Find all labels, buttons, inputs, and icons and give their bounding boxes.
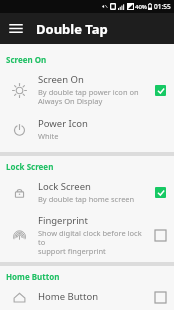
staticText: 40% <box>135 3 147 11</box>
staticText: Screen On <box>6 54 47 65</box>
button[interactable]: Home Button <box>0 285 174 310</box>
staticText: By double tap power icon on Always On Di… <box>38 87 139 107</box>
staticText: Screen On <box>38 73 84 86</box>
staticText: 01:55 <box>154 2 171 11</box>
button[interactable]: Lock Screen <box>0 175 174 209</box>
button[interactable]: Screen On <box>0 68 174 112</box>
button[interactable]: Open navigation menu <box>0 13 31 44</box>
staticText: Fingerprint <box>38 214 88 227</box>
staticText: By double tap home screen <box>38 194 135 204</box>
button[interactable]: Disabled <box>155 292 166 303</box>
button[interactable]: Disabled <box>155 230 166 241</box>
button[interactable]: Fingerprint <box>0 209 174 262</box>
staticText: Lock Screen <box>38 180 91 193</box>
button[interactable]: Enabled <box>155 187 166 198</box>
staticText: White <box>38 131 59 141</box>
staticText: Show digital clock before lock to suppor… <box>38 228 149 257</box>
button[interactable]: Power Icon <box>0 112 174 146</box>
staticText: Power Icon <box>38 117 88 130</box>
staticText: Double Tap <box>36 20 108 38</box>
staticText: Home Button <box>38 290 99 303</box>
staticText: Lock Screen <box>6 161 54 172</box>
button[interactable]: Enabled <box>155 85 166 96</box>
staticText: Home Button <box>6 271 60 282</box>
